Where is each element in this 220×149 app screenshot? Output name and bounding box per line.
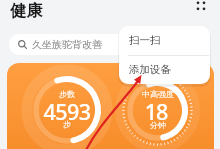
staticText: 步 [30, 119, 104, 129]
staticText: 4593 [30, 97, 104, 126]
button[interactable]: 扫一扫 [119, 26, 210, 55]
button[interactable]: 添加设备 [119, 55, 210, 84]
staticText: 添加设备 [129, 63, 171, 76]
button[interactable] [194, 0, 208, 12]
staticText: 步数 [30, 89, 104, 99]
staticText: 久坐族驼背改善 [32, 38, 102, 51]
staticText: 扫一扫 [129, 34, 161, 47]
staticText: 中高强度 [121, 89, 195, 99]
staticText: 健康 [10, 1, 43, 21]
staticText: 18 [119, 97, 193, 126]
staticText: 分钟 [121, 120, 195, 130]
button[interactable]: 步数 [7, 63, 214, 149]
button[interactable]: 久坐族驼背改善 [9, 34, 211, 55]
